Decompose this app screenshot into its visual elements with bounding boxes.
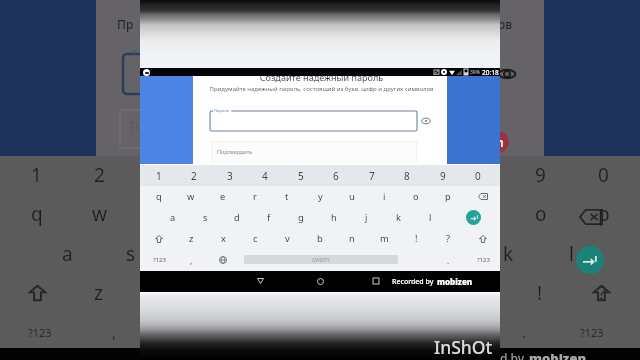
button[interactable]: 8 <box>389 165 425 186</box>
button[interactable]: 3 <box>212 165 248 186</box>
staticText: 1 <box>31 162 42 188</box>
staticText: , <box>112 323 116 342</box>
button[interactable]: Сменить язык <box>207 249 239 271</box>
staticText: 6 <box>333 169 339 183</box>
button[interactable]: Удалить <box>465 186 501 207</box>
button[interactable]: b <box>304 228 336 249</box>
button[interactable]: r <box>239 186 271 207</box>
button[interactable]: 2 <box>176 165 212 186</box>
button[interactable]: x <box>207 228 239 249</box>
button[interactable]: m <box>368 228 400 249</box>
staticText: 0 <box>475 169 481 183</box>
staticText: . <box>447 255 450 266</box>
staticText: m <box>468 280 486 306</box>
staticText: . <box>522 323 526 342</box>
button[interactable]: ? <box>432 228 464 249</box>
staticText: z <box>94 280 103 306</box>
staticText: c <box>220 280 230 306</box>
button[interactable]: Назад <box>250 271 270 291</box>
staticText: ! <box>415 232 418 245</box>
staticText: mobizen <box>529 349 587 360</box>
button[interactable]: , <box>175 249 207 271</box>
button[interactable]: 6 <box>318 165 354 186</box>
staticText: d <box>234 211 240 224</box>
button[interactable]: 4 <box>247 165 283 186</box>
button[interactable]: ?123 <box>465 249 501 271</box>
staticText: e <box>220 190 226 203</box>
button[interactable]: p <box>432 186 464 207</box>
button[interactable]: c <box>239 228 271 249</box>
staticText: j <box>365 211 368 224</box>
button[interactable]: w <box>175 186 207 207</box>
button[interactable]: d <box>221 207 253 228</box>
staticText: f <box>253 241 260 267</box>
button[interactable]: a <box>157 207 189 228</box>
button[interactable]: f <box>253 207 285 228</box>
staticText: j <box>443 241 448 267</box>
staticText: a <box>170 211 176 224</box>
staticText: p <box>445 190 451 203</box>
button[interactable]: Ввод <box>455 207 491 228</box>
button[interactable]: u <box>336 186 368 207</box>
staticText: r <box>253 190 257 203</box>
button[interactable]: g <box>285 207 317 228</box>
button[interactable]: l <box>414 207 446 228</box>
staticText: b <box>317 232 323 245</box>
staticText: 0 <box>598 162 609 188</box>
staticText: QWERTY <box>312 257 331 263</box>
button[interactable]: Обзор <box>366 271 386 291</box>
button[interactable]: 9 <box>425 165 461 186</box>
button[interactable]: Верхний регистр (справа) <box>465 228 501 249</box>
staticText: П <box>130 118 139 133</box>
staticText: s <box>126 241 136 267</box>
staticText: i <box>475 201 480 227</box>
button[interactable]: Подтвердить <box>211 141 417 162</box>
button[interactable]: Пароль <box>210 111 417 131</box>
staticText: f <box>267 211 271 224</box>
button[interactable]: 0 <box>460 165 496 186</box>
staticText: 1 <box>156 169 162 183</box>
staticText: z <box>189 232 194 245</box>
button[interactable]: s <box>189 207 221 228</box>
button[interactable]: t <box>271 186 303 207</box>
button[interactable]: j <box>350 207 382 228</box>
button[interactable]: ! <box>400 228 432 249</box>
button[interactable]: Главный экран <box>310 271 330 291</box>
button[interactable]: y <box>304 186 336 207</box>
button[interactable]: n <box>336 228 368 249</box>
button[interactable]: Пробел <box>244 255 398 264</box>
button[interactable]: v <box>271 228 303 249</box>
button[interactable]: i <box>368 186 400 207</box>
button[interactable]: Верхний регистр <box>143 228 175 249</box>
staticText: g <box>314 241 326 267</box>
staticText: л <box>131 46 136 57</box>
staticText: w <box>92 201 107 227</box>
button[interactable]: 7 <box>354 165 390 186</box>
button[interactable]: h <box>318 207 350 228</box>
staticText: s <box>203 211 208 224</box>
staticText: m <box>492 134 504 150</box>
staticText: d by <box>500 350 525 360</box>
staticText: x <box>156 280 167 306</box>
button[interactable]: k <box>382 207 414 228</box>
staticText: 3 <box>157 162 168 188</box>
staticText: 8 <box>404 169 410 183</box>
button[interactable]: ?123 <box>143 249 175 271</box>
button[interactable]: 5 <box>283 165 319 186</box>
staticText: i <box>383 190 386 203</box>
button[interactable]: o <box>400 186 432 207</box>
staticText: k <box>396 211 401 224</box>
button[interactable]: e <box>207 186 239 207</box>
button[interactable]: Показать пароль <box>420 115 432 127</box>
button[interactable]: 1 <box>141 165 177 186</box>
staticText: k <box>503 241 514 267</box>
staticText: , <box>190 255 193 266</box>
button[interactable]: q <box>143 186 175 207</box>
button[interactable]: z <box>175 228 207 249</box>
staticText: InShOt <box>434 335 493 359</box>
staticText: t <box>285 190 289 203</box>
button[interactable]: . <box>432 249 464 271</box>
